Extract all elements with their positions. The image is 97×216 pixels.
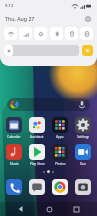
staticText: Duo bbox=[80, 162, 87, 166]
button[interactable]: Apps bbox=[52, 117, 68, 139]
button[interactable]: Recents bbox=[69, 202, 83, 216]
staticText: Assistant bbox=[30, 135, 44, 139]
button[interactable]: Auto brightness bbox=[82, 45, 93, 56]
button[interactable]: Messages bbox=[29, 179, 45, 195]
button[interactable]: bell bbox=[34, 27, 47, 40]
button[interactable]: Camera bbox=[75, 179, 91, 195]
button[interactable]: flash bbox=[65, 27, 78, 40]
button[interactable]: Chrome bbox=[52, 179, 68, 195]
button[interactable]: Back bbox=[14, 202, 28, 216]
button[interactable]: Music bbox=[6, 144, 22, 166]
button[interactable]: bt bbox=[50, 27, 63, 40]
button[interactable]: wifi bbox=[4, 27, 17, 40]
button[interactable]: Brightness bbox=[4, 45, 79, 56]
button[interactable]: Home bbox=[42, 202, 56, 216]
staticText: Thu, Aug 27 bbox=[5, 15, 35, 22]
staticText: Play Store bbox=[30, 162, 45, 166]
staticText: Music bbox=[10, 162, 19, 166]
staticText: Calendar bbox=[7, 135, 21, 139]
staticText: Photos bbox=[55, 162, 66, 166]
button[interactable]: Phone bbox=[6, 179, 22, 195]
button[interactable]: Settings bbox=[83, 14, 92, 23]
button[interactable]: rotate bbox=[80, 27, 93, 40]
button[interactable]: Calendar bbox=[6, 117, 22, 139]
button[interactable]: Assistant bbox=[29, 117, 45, 139]
staticText: Apps bbox=[56, 135, 64, 139]
button[interactable]: Duo bbox=[75, 144, 91, 166]
button[interactable]: signal bbox=[19, 27, 32, 40]
button[interactable]: Google search bbox=[7, 98, 90, 111]
staticText: Settings bbox=[77, 135, 90, 139]
button[interactable]: Photos bbox=[52, 144, 68, 166]
button[interactable]: Settings bbox=[75, 117, 91, 139]
staticText: 9:12 bbox=[5, 3, 14, 9]
button[interactable]: Play Store bbox=[29, 144, 45, 166]
